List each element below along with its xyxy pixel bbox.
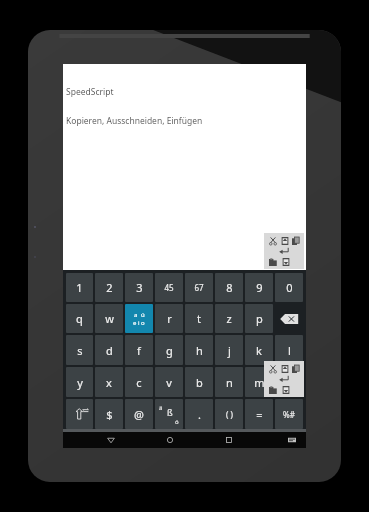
button[interactable]: 67: [185, 273, 213, 302]
button[interactable]: p: [245, 304, 273, 333]
button[interactable]: Cut: [267, 363, 278, 374]
staticText: 0: [286, 280, 293, 295]
button[interactable]: =: [245, 399, 273, 429]
staticText: j: [228, 343, 231, 358]
button[interactable]: h: [185, 335, 213, 365]
staticText: 8: [226, 280, 233, 295]
button[interactable]: d: [95, 335, 123, 365]
button[interactable]: Paste: [267, 256, 278, 267]
button[interactable]: z: [215, 304, 243, 333]
staticText: o: [141, 319, 145, 327]
button[interactable]: Hide keyboard: [284, 432, 300, 448]
button[interactable]: Cut to clipboard: [279, 363, 290, 374]
staticText: b: [196, 375, 203, 390]
staticText: ( ): [226, 409, 233, 420]
staticText: v: [166, 375, 172, 390]
button[interactable]: $: [95, 399, 123, 429]
button[interactable]: [275, 367, 303, 397]
button[interactable]: g: [155, 335, 183, 365]
staticText: Kopieren, Ausschneiden, Einfügen: [66, 115, 203, 127]
staticText: i: [138, 319, 140, 327]
staticText: n: [226, 375, 233, 390]
staticText: d: [106, 343, 113, 358]
button[interactable]: Shift: [66, 399, 93, 429]
button[interactable]: Paste from clipboard: [280, 256, 291, 267]
button[interactable]: l: [275, 335, 303, 365]
staticText: $: [106, 407, 113, 422]
button[interactable]: 3: [125, 273, 153, 302]
button[interactable]: 1: [66, 273, 93, 302]
staticText: f: [137, 343, 141, 358]
button[interactable]: b: [185, 367, 213, 397]
button[interactable]: v: [155, 367, 183, 397]
button[interactable]: Cut to clipboard: [279, 235, 290, 246]
staticText: 1: [76, 280, 83, 295]
button[interactable]: @: [125, 399, 153, 429]
staticText: 3: [136, 280, 143, 295]
staticText: s: [77, 343, 83, 358]
staticText: ä: [159, 404, 163, 412]
button[interactable]: Recents: [221, 432, 237, 448]
staticText: x: [106, 375, 112, 390]
button[interactable]: Copy: [290, 363, 301, 374]
staticText: 9: [256, 280, 263, 295]
staticText: ö: [175, 418, 179, 426]
staticText: t: [197, 311, 201, 326]
button[interactable]: Paste: [267, 384, 278, 395]
button[interactable]: Copy: [290, 235, 301, 246]
staticText: h: [196, 343, 203, 358]
button[interactable]: s: [66, 335, 93, 365]
button[interactable]: 2: [95, 273, 123, 302]
button[interactable]: j: [215, 335, 243, 365]
button[interactable]: 9: [245, 273, 273, 302]
button[interactable]: 0: [275, 273, 303, 302]
staticText: .: [198, 407, 201, 422]
button[interactable]: y: [66, 367, 93, 397]
button[interactable]: Backspace: [275, 304, 303, 333]
button[interactable]: t: [185, 304, 213, 333]
button[interactable]: c: [125, 367, 153, 397]
button[interactable]: q: [66, 304, 93, 333]
button[interactable]: Enter: [266, 374, 302, 384]
staticText: 2: [106, 280, 113, 295]
staticText: g: [166, 343, 173, 358]
button[interactable]: w: [95, 304, 123, 333]
staticText: e: [133, 319, 137, 327]
staticText: c: [136, 375, 142, 390]
staticText: k: [256, 343, 262, 358]
button[interactable]: ( ): [215, 399, 243, 429]
staticText: @: [134, 407, 144, 422]
staticText: r: [167, 311, 172, 326]
button[interactable]: Enter: [266, 246, 302, 256]
button[interactable]: 8: [215, 273, 243, 302]
button[interactable]: n: [215, 367, 243, 397]
button[interactable]: a: [125, 304, 153, 333]
staticText: =: [256, 407, 263, 422]
button[interactable]: ä: [155, 399, 183, 429]
staticText: y: [77, 375, 83, 390]
staticText: ß: [167, 406, 173, 418]
button[interactable]: x: [95, 367, 123, 397]
staticText: p: [256, 311, 263, 326]
button[interactable]: 45: [155, 273, 183, 302]
button[interactable]: m: [245, 367, 273, 397]
button[interactable]: Back: [103, 432, 119, 448]
staticText: SpeedScript: [66, 86, 114, 98]
button[interactable]: r: [155, 304, 183, 333]
staticText: a: [134, 311, 138, 319]
button[interactable]: k: [245, 335, 273, 365]
button[interactable]: %#: [275, 399, 303, 429]
staticText: w: [105, 311, 114, 326]
button[interactable]: Home: [162, 432, 178, 448]
staticText: ü: [141, 311, 145, 319]
staticText: 45: [164, 282, 174, 293]
button[interactable]: Cut: [267, 235, 278, 246]
staticText: %#: [283, 409, 295, 420]
staticText: m: [254, 375, 265, 390]
staticText: 67: [194, 282, 204, 293]
button[interactable]: .: [185, 399, 213, 429]
button[interactable]: Paste from clipboard: [280, 384, 291, 395]
button[interactable]: f: [125, 335, 153, 365]
staticText: z: [226, 311, 232, 326]
staticText: l: [288, 343, 291, 358]
